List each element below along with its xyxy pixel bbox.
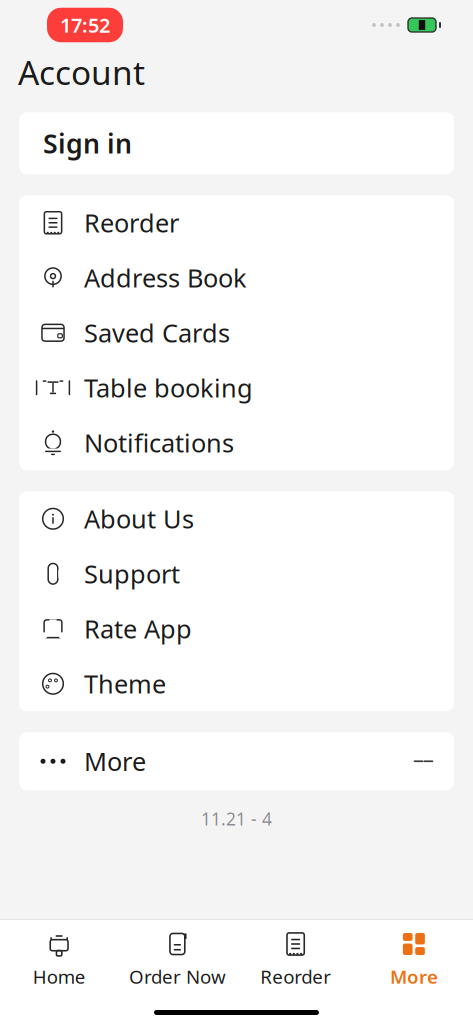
staticText: Theme: [84, 667, 166, 700]
staticText: About Us: [84, 502, 194, 535]
button[interactable]: More: [19, 732, 454, 790]
staticText: More: [390, 964, 438, 989]
button[interactable]: Notifications: [19, 415, 454, 470]
button[interactable]: Support: [19, 546, 454, 601]
button[interactable]: Reorder: [19, 195, 454, 250]
staticText: Order Now: [129, 964, 226, 989]
staticText: Reorder: [84, 206, 179, 239]
staticText: Notifications: [84, 426, 234, 459]
staticText: Home: [33, 964, 86, 989]
staticText: Saved Cards: [84, 316, 230, 349]
staticText: 17:52: [60, 12, 110, 38]
staticText: Sign in: [43, 126, 132, 161]
button[interactable]: Saved Cards: [19, 305, 454, 360]
staticText: Table booking: [84, 371, 253, 404]
button[interactable]: More: [355, 920, 473, 997]
button[interactable]: Reorder: [236, 920, 355, 997]
staticText: More: [84, 744, 146, 778]
button[interactable]: Theme: [19, 656, 454, 711]
staticText: Address Book: [84, 261, 247, 294]
staticText: Account: [18, 50, 145, 94]
staticText: Support: [84, 557, 180, 590]
button[interactable]: Rate App: [19, 601, 454, 656]
button[interactable]: Table booking: [19, 360, 454, 415]
button[interactable]: Order Now: [118, 920, 236, 997]
button[interactable]: About Us: [19, 491, 454, 546]
button[interactable]: Sign in: [19, 112, 454, 174]
staticText: Rate App: [84, 612, 192, 645]
button[interactable]: Home: [0, 920, 118, 997]
staticText: Reorder: [260, 964, 331, 989]
staticText: 11.21 - 4: [201, 807, 272, 830]
button[interactable]: Address Book: [19, 250, 454, 305]
